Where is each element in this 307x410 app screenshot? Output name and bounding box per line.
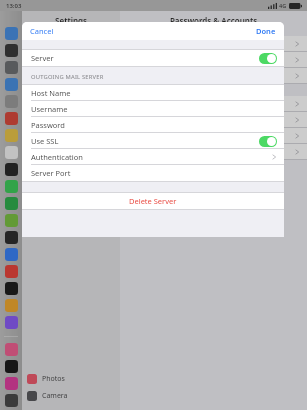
button[interactable]: App	[5, 163, 18, 176]
button[interactable]: Server	[22, 50, 284, 66]
button[interactable]: App	[5, 360, 18, 373]
staticText: 13:03	[6, 2, 22, 10]
button[interactable]: Photos	[22, 370, 120, 387]
button[interactable]: App	[5, 61, 18, 74]
button[interactable]: App	[5, 180, 18, 193]
button[interactable]: App	[5, 231, 18, 244]
button[interactable]: App	[5, 343, 18, 356]
button[interactable]: Camera	[22, 387, 120, 404]
staticText: Done	[256, 26, 276, 36]
button[interactable]: Password	[22, 117, 284, 133]
staticText: Authentication	[31, 152, 83, 162]
staticText: Use SSL	[31, 136, 59, 146]
button[interactable]: App	[5, 316, 18, 329]
button[interactable]: App	[5, 282, 18, 295]
staticText: OUTGOING MAIL SERVER	[31, 73, 104, 81]
button[interactable]: App	[5, 78, 18, 91]
staticText: Camera	[42, 391, 68, 401]
button[interactable]: App	[5, 146, 18, 159]
staticText: Photos	[42, 374, 65, 384]
button[interactable]: Done	[256, 26, 276, 36]
button[interactable]: App	[5, 27, 18, 40]
staticText: Username	[31, 104, 68, 114]
staticText: 4G	[279, 2, 287, 9]
button[interactable]: Authentication	[22, 149, 284, 165]
button[interactable]: Server on	[259, 53, 277, 64]
button[interactable]: App	[5, 129, 18, 142]
button[interactable]: Use SSL on	[259, 136, 277, 147]
button[interactable]: App	[5, 377, 18, 390]
button[interactable]: App	[5, 248, 18, 261]
button[interactable]: App	[5, 394, 18, 407]
button[interactable]: App	[5, 214, 18, 227]
button[interactable]: Host Name	[22, 85, 284, 101]
staticText: Server	[31, 53, 54, 63]
button[interactable]: App	[5, 265, 18, 278]
staticText: Passwords & Accounts	[120, 15, 307, 26]
staticText: Host Name	[31, 88, 71, 98]
staticText: Delete Server	[129, 196, 177, 206]
button[interactable]: Delete Server	[22, 193, 284, 209]
staticText: Cancel	[30, 26, 54, 36]
button[interactable]: App	[5, 95, 18, 108]
button[interactable]: Use SSL	[22, 133, 284, 149]
staticText: Password	[31, 120, 65, 130]
staticText: Server Port	[31, 168, 71, 178]
button[interactable]: App	[5, 44, 18, 57]
button[interactable]: App	[5, 112, 18, 125]
button[interactable]: Username	[22, 101, 284, 117]
button[interactable]: Cancel	[30, 26, 54, 36]
button[interactable]: App	[5, 197, 18, 210]
button[interactable]: App	[5, 299, 18, 312]
staticText: Settings	[22, 15, 120, 26]
button[interactable]: Server Port	[22, 165, 284, 181]
